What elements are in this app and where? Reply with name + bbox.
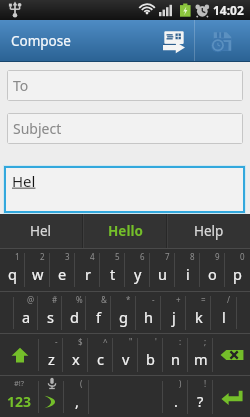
- staticText: l: [222, 307, 226, 327]
- staticText: s: [47, 307, 54, 327]
- staticText: j: [172, 307, 176, 327]
- staticText: Subject: [13, 119, 62, 138]
- staticText: #: [52, 294, 58, 305]
- staticText: ': [155, 336, 157, 347]
- button[interactable]: Voice input: [39, 376, 64, 417]
- staticText: p: [233, 264, 242, 284]
- staticText: ,: [75, 391, 79, 411]
- button[interactable]: *: [111, 292, 136, 333]
- button[interactable]: Backspace: [213, 334, 250, 375]
- button[interactable]: ): [163, 376, 188, 417]
- staticText: ": [129, 336, 133, 347]
- staticText: r: [85, 264, 91, 284]
- button[interactable]: $: [63, 334, 88, 375]
- staticText: (: [80, 378, 83, 389]
- button[interactable]: ;: [188, 334, 213, 375]
- staticText: k: [195, 307, 203, 327]
- staticText: %: [76, 294, 83, 305]
- staticText: Hel: [30, 222, 52, 240]
- staticText: d: [70, 307, 79, 327]
- button[interactable]: 0: [225, 249, 250, 291]
- button[interactable]: 9: [200, 249, 225, 291]
- staticText: n: [171, 349, 180, 369]
- staticText: h: [144, 307, 153, 327]
- button[interactable]: (: [64, 376, 89, 417]
- staticText: @: [27, 294, 35, 305]
- staticText: 0: [240, 251, 245, 262]
- staticText: =: [201, 294, 206, 305]
- staticText: m: [194, 349, 208, 369]
- staticText: Hello: [108, 222, 143, 240]
- staticText: -: [55, 336, 58, 347]
- staticText: /: [227, 294, 230, 305]
- button[interactable]: Enter: [213, 376, 250, 417]
- staticText: 9: [215, 251, 220, 262]
- staticText: Hel: [12, 171, 36, 191]
- staticText: 8: [190, 251, 195, 262]
- button[interactable]: @: [14, 292, 38, 333]
- staticText: To: [13, 76, 29, 95]
- staticText: w: [32, 264, 44, 284]
- button[interactable]: 2: [25, 249, 50, 291]
- button[interactable]: !: [188, 376, 213, 417]
- staticText: 14:02: [213, 2, 244, 18]
- button[interactable]: To: [8, 71, 242, 100]
- button[interactable]: 8: [175, 249, 200, 291]
- staticText: 4: [90, 251, 95, 262]
- button[interactable]: Hel: [6, 168, 243, 211]
- staticText: &: [101, 294, 107, 305]
- staticText: *: [126, 294, 131, 305]
- button[interactable]: 7: [150, 249, 175, 291]
- button[interactable]: /: [211, 292, 236, 333]
- staticText: 6: [140, 251, 145, 262]
- staticText: t: [110, 264, 116, 284]
- button[interactable]: -: [136, 292, 161, 333]
- staticText: y: [134, 264, 142, 284]
- staticText: f: [96, 307, 101, 327]
- staticText: #!?: [14, 378, 25, 388]
- button[interactable]: Subject: [8, 114, 242, 143]
- button[interactable]: Hello: [84, 214, 166, 248]
- button[interactable]: Save draft: [195, 20, 250, 62]
- button[interactable]: 1: [0, 249, 25, 291]
- button[interactable]: 3: [50, 249, 75, 291]
- button[interactable]: ': [138, 334, 163, 375]
- button[interactable]: Help: [168, 214, 250, 248]
- button[interactable]: %: [62, 292, 86, 333]
- staticText: 3: [65, 251, 70, 262]
- button[interactable]: Hel: [0, 214, 82, 248]
- button[interactable]: #: [38, 292, 62, 333]
- staticText: 123: [7, 392, 32, 411]
- staticText: $: [78, 336, 83, 347]
- staticText: ;: [204, 336, 207, 347]
- staticText: Compose: [11, 32, 153, 50]
- staticText: 5: [115, 251, 120, 262]
- staticText: -: [152, 294, 155, 305]
- button[interactable]: +: [161, 292, 186, 333]
- button[interactable]: Shift: [0, 334, 39, 375]
- staticText: a: [22, 307, 31, 327]
- staticText: ): [179, 378, 182, 389]
- button[interactable]: =: [186, 292, 211, 333]
- button[interactable]: -: [39, 334, 63, 375]
- button[interactable]: #!?: [0, 376, 39, 417]
- button[interactable]: :: [163, 334, 188, 375]
- staticText: ^: [103, 336, 108, 347]
- staticText: e: [58, 264, 67, 284]
- staticText: Help: [194, 222, 224, 240]
- button[interactable]: Send: [153, 20, 194, 62]
- button[interactable]: 5: [100, 249, 125, 291]
- staticText: ?: [197, 391, 204, 411]
- button[interactable]: ": [113, 334, 138, 375]
- staticText: o: [208, 264, 217, 284]
- staticText: x: [72, 349, 80, 369]
- staticText: .: [174, 391, 178, 411]
- button[interactable]: 6: [125, 249, 150, 291]
- staticText: 1: [15, 251, 20, 262]
- button[interactable]: ^: [88, 334, 113, 375]
- button[interactable]: &: [86, 292, 111, 333]
- staticText: i: [186, 264, 190, 284]
- staticText: !: [204, 378, 207, 389]
- button[interactable]: 4: [75, 249, 100, 291]
